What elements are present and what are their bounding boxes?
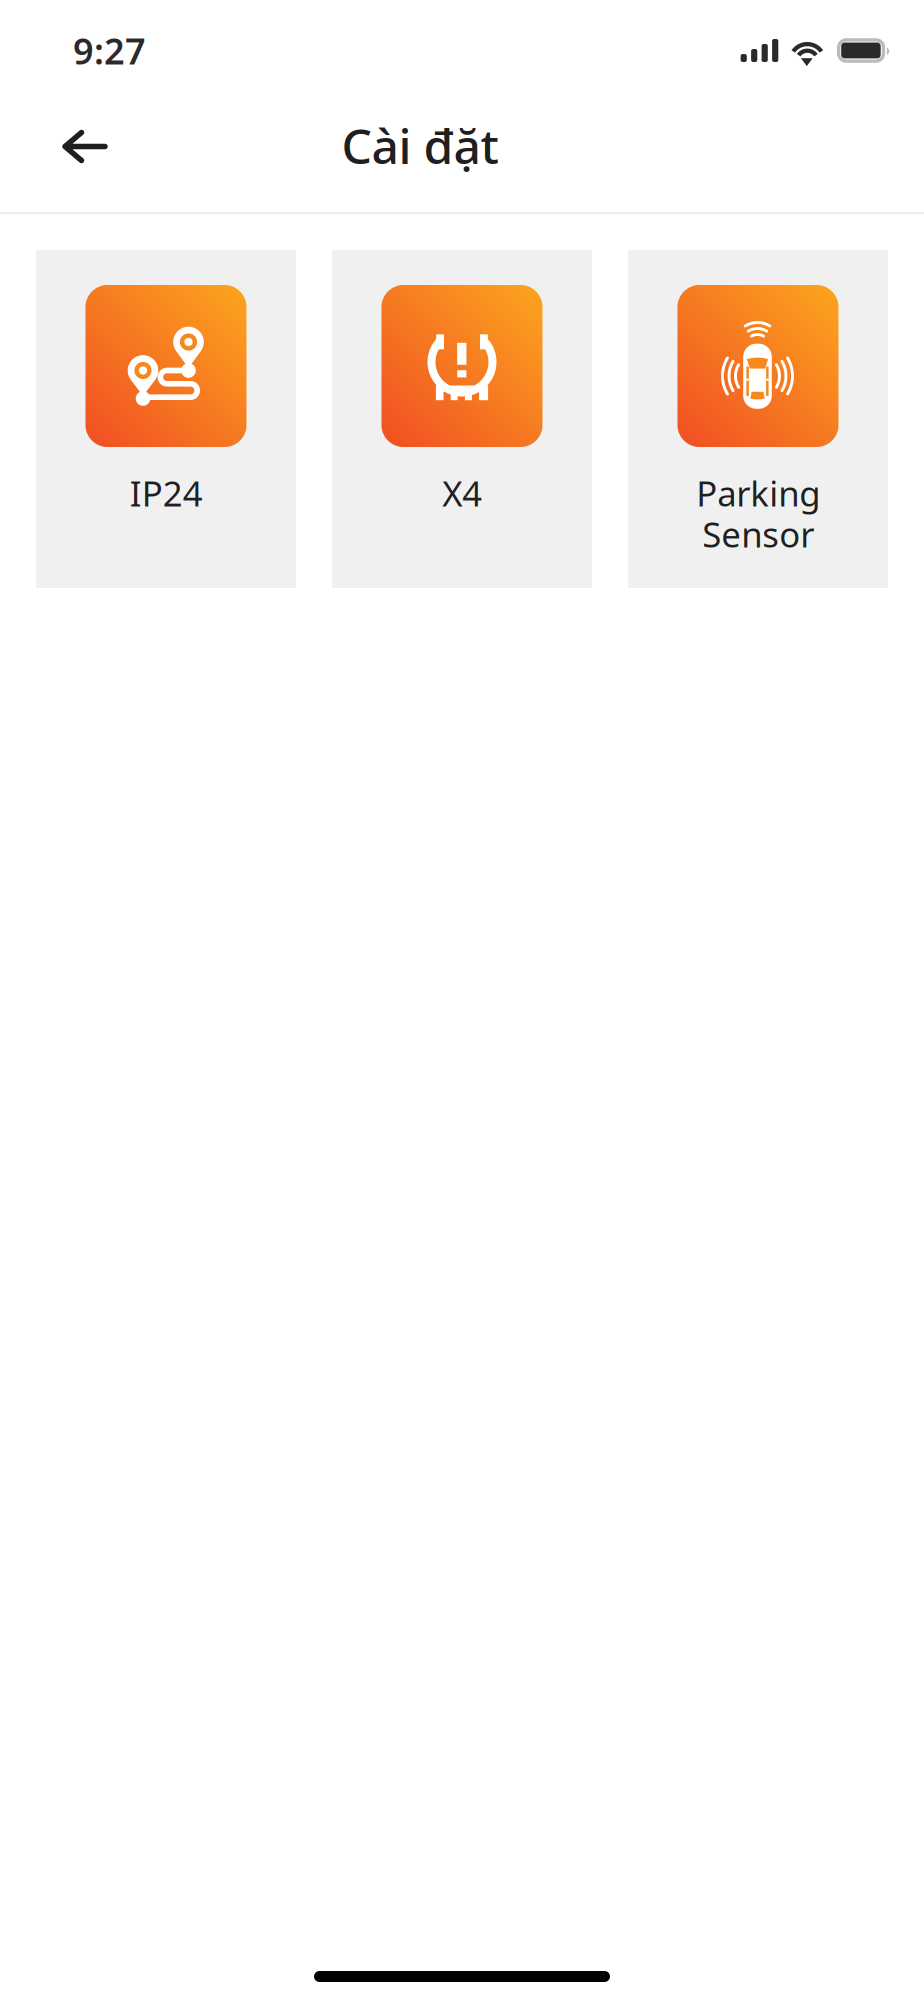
staticText: Parking Sensor [696,470,820,557]
staticText: IP24 [129,470,202,516]
button[interactable]: Parking Sensor [628,250,888,588]
staticText: X4 [442,470,482,516]
button[interactable]: IP24 [36,250,296,588]
staticText: 9:27 [73,27,146,74]
staticText: Cài đặt [341,114,498,177]
button[interactable]: Back [46,113,124,179]
button[interactable]: X4 [332,250,592,588]
